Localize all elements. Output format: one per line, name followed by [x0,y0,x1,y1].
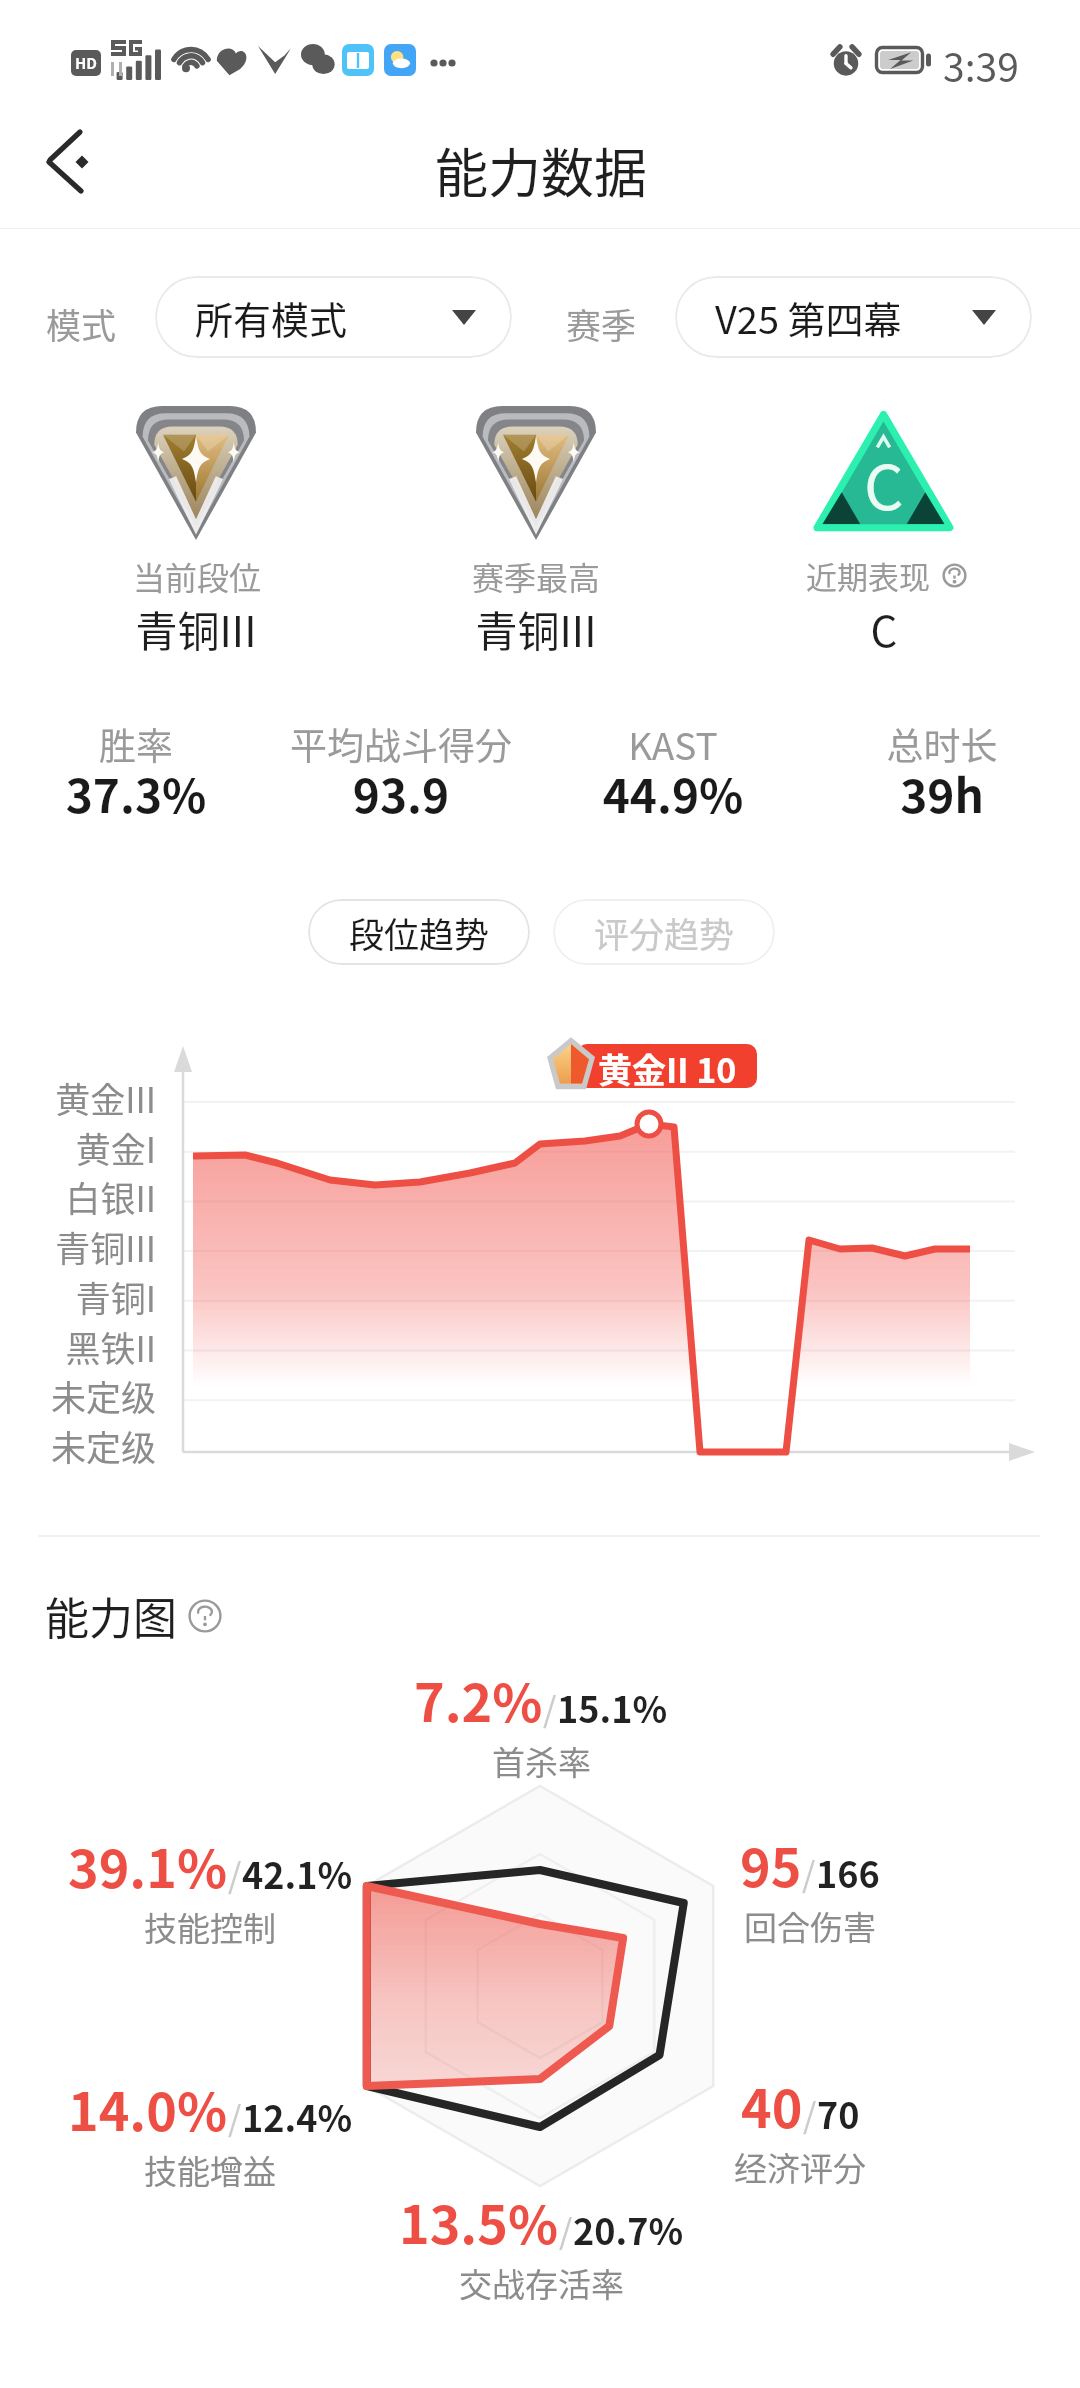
staticText: / [543,1683,557,1732]
staticText: 44.9% [443,760,903,827]
staticText: 20.7% [573,2203,684,2255]
staticText: 42.1% [242,1847,353,1899]
staticText: 未定级 [0,1370,156,1421]
staticText: 当前段位 [0,553,427,599]
staticText: 12.4% [242,2090,353,2142]
staticText: / [228,1849,242,1898]
staticText: 赛季 [566,298,637,349]
staticText: 黑铁II [0,1321,156,1372]
button[interactable]: Back [20,120,110,210]
staticText: 黄金I [0,1122,156,1173]
staticText: 93.9 [171,760,631,827]
staticText: 交战存活率 [459,2259,624,2307]
staticText: 青铜I [0,1271,156,1322]
staticText: 39h [712,760,1080,827]
staticText: 3:39 [943,37,1019,93]
staticText: C [864,438,904,528]
staticText: 总时长 [712,717,1080,771]
staticText: / [802,1848,816,1897]
staticText: C [654,598,1080,659]
staticText: 37.3% [0,760,366,827]
staticText: 黄金III [0,1072,156,1123]
staticText: 白银II [0,1171,156,1222]
staticText: 近期表现 [806,553,930,598]
staticText: 黄金II 10 [598,1044,737,1088]
button[interactable]: V25 第四幕 [675,276,1032,358]
staticText: 赛季最高 [306,553,766,599]
staticText: 评分趋势 [594,907,735,958]
staticText: 技能增益 [144,2146,276,2194]
staticText: 15.1% [557,1681,668,1733]
staticText: 青铜III [306,598,766,659]
staticText: 经济评分 [734,2143,866,2191]
staticText: 13.5% [399,2184,559,2259]
staticText: 166 [816,1846,880,1898]
staticText: 14.0% [68,2071,228,2146]
staticText: V25 第四幕 [715,290,902,345]
staticText: 青铜III [0,1221,156,1272]
staticText: 青铜III [0,598,426,659]
button[interactable]: 段位趋势 [308,899,530,965]
staticText: 首杀率 [492,1737,591,1785]
staticText: 40 [741,2068,803,2143]
staticText: KAST [443,717,903,771]
staticText: 胜率 [0,717,366,771]
button[interactable]: 评分趋势 [553,899,775,965]
staticText: 技能控制 [144,1903,276,1951]
staticText: 能力数据 [435,132,647,209]
staticText: 段位趋势 [349,907,490,958]
staticText: 95 [740,1827,802,1902]
staticText: 39.1% [68,1828,228,1903]
staticText: 70 [817,2087,860,2139]
staticText: 能力图 [45,1584,177,1648]
staticText: / [228,2092,242,2141]
button[interactable]: 所有模式 [155,276,512,358]
staticText: / [559,2205,573,2254]
staticText: HD [75,52,98,74]
staticText: / [803,2089,817,2138]
staticText: 回合伤害 [744,1902,876,1950]
staticText: 7.2% [414,1662,543,1737]
staticText: 未定级 [0,1420,156,1471]
staticText: 平均战斗得分 [171,717,631,771]
staticText: 所有模式 [195,290,348,345]
staticText: 模式 [46,298,117,349]
